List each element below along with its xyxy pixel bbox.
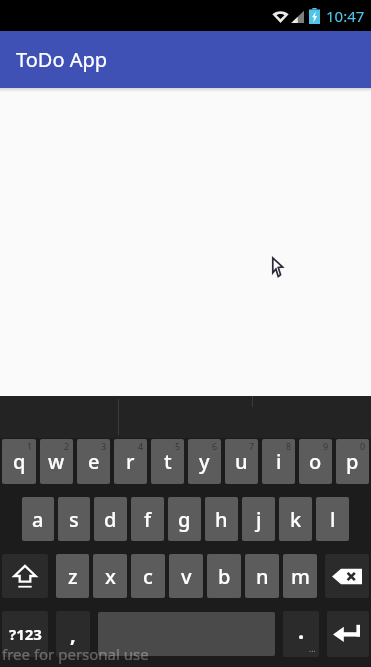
button[interactable]: Comma [56,611,90,657]
staticText: x [105,563,116,590]
staticText: t [164,448,172,475]
staticText: . [298,615,305,645]
staticText: l [330,506,336,533]
button[interactable]: Period [283,611,319,657]
staticText: 1 [27,440,33,452]
button[interactable]: j [242,497,275,541]
staticText: z [68,563,78,590]
button[interactable]: x [93,554,127,598]
staticText: a [32,506,44,533]
button[interactable]: f [131,497,164,541]
staticText: j [256,506,262,533]
button[interactable]: w [40,439,73,484]
button[interactable]: s [58,497,90,541]
staticText: 5 [175,440,181,452]
button[interactable]: t [151,439,184,484]
staticText: 2 [64,440,70,452]
staticText: n [256,563,269,590]
button[interactable]: i [262,439,295,484]
staticText: 7 [249,440,255,452]
button[interactable]: r [114,439,147,484]
staticText: 9 [323,440,329,452]
button[interactable]: k [279,497,312,541]
staticText: h [215,506,228,533]
button[interactable]: a [22,497,54,541]
button[interactable]: y [188,439,221,484]
button[interactable]: g [168,497,201,541]
staticText: w [48,448,65,475]
button[interactable]: l [316,497,349,541]
button[interactable]: b [207,554,241,598]
staticText: b [218,563,231,590]
button[interactable]: z [56,554,89,598]
button[interactable]: v [169,554,203,598]
staticText: p [346,448,359,475]
staticText: 3 [101,440,107,452]
button[interactable]: o [299,439,332,484]
staticText: m [291,563,310,590]
button[interactable]: e [77,439,110,484]
staticText: r [126,448,135,475]
button[interactable]: Space [98,612,275,656]
staticText: o [309,448,322,475]
staticText: 8 [286,440,292,452]
staticText: e [88,448,100,475]
button[interactable]: u [225,439,258,484]
button[interactable]: Backspace [325,554,369,598]
staticText: 4 [138,440,144,452]
button[interactable]: Shift [2,554,48,598]
staticText: d [104,506,117,533]
button[interactable]: m [283,554,317,598]
staticText: f [144,506,152,533]
staticText: free for personal use [2,644,149,664]
button[interactable]: c [131,554,165,598]
staticText: y [199,448,210,475]
staticText: s [69,506,79,533]
staticText: ?123 [9,624,42,644]
staticText: k [290,506,302,533]
staticText: 10:47 [326,6,365,26]
button[interactable]: Symbols [2,611,48,657]
staticText: c [143,563,153,590]
button[interactable]: n [245,554,279,598]
button[interactable]: q [2,439,36,484]
button[interactable]: p [336,439,369,484]
staticText: 6 [212,440,218,452]
staticText: q [13,448,26,475]
staticText: ToDo App [16,46,108,73]
button[interactable]: Enter [327,611,369,657]
button[interactable]: ToDo App [0,31,371,88]
staticText: 0 [360,440,366,452]
staticText: , [70,621,76,648]
button[interactable]: h [205,497,238,541]
staticText: i [276,448,282,475]
staticText: v [181,563,192,590]
staticText: g [178,506,191,533]
button[interactable]: d [94,497,127,541]
staticText: u [235,448,248,475]
staticText: ... [309,643,316,654]
